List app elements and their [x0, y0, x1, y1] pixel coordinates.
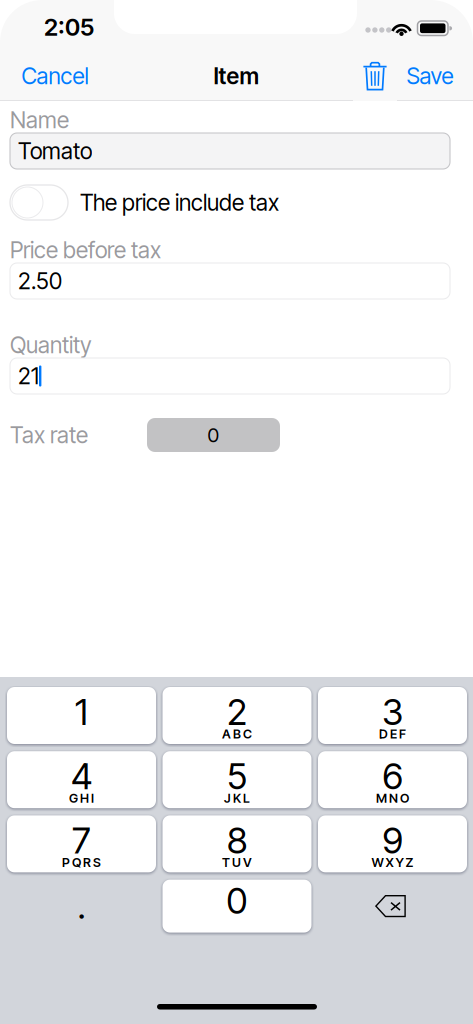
button[interactable]: 9 — [318, 815, 467, 872]
staticText: 8 — [227, 819, 247, 862]
staticText: 4 — [71, 754, 92, 798]
staticText: The price include tax — [80, 189, 279, 216]
staticText: Save — [406, 62, 453, 90]
staticText: A B C — [222, 726, 252, 742]
staticText: G H I — [69, 790, 94, 806]
button[interactable]: 7 — [7, 815, 156, 872]
staticText: 0 — [207, 423, 219, 447]
button[interactable]: 8 — [162, 815, 311, 872]
button[interactable]: 4 — [7, 751, 156, 808]
button[interactable]: Delete — [318, 880, 467, 933]
staticText: W X Y Z — [371, 855, 413, 870]
staticText: 0 — [226, 879, 247, 922]
staticText: 2 — [227, 690, 247, 734]
button[interactable]: The price include tax — [10, 185, 68, 220]
button[interactable]: Save — [400, 51, 460, 101]
staticText: Tax rate — [10, 421, 88, 449]
staticText: 1 — [75, 690, 88, 734]
button[interactable]: 0 — [162, 880, 311, 933]
staticText: 3 — [382, 690, 403, 734]
staticText: 9 — [382, 819, 402, 862]
button[interactable]: 5 — [162, 751, 311, 808]
staticText: Item — [213, 62, 259, 90]
staticText: 5 — [227, 754, 247, 798]
staticText: 2:05 — [44, 12, 94, 41]
staticText: T U V — [222, 855, 252, 870]
staticText: D E F — [379, 726, 406, 742]
staticText: J K L — [224, 790, 250, 806]
button[interactable]: 2 — [162, 687, 311, 744]
staticText: Name — [10, 106, 69, 134]
button[interactable]: 6 — [318, 751, 467, 808]
staticText: . — [77, 885, 85, 927]
staticText: 7 — [72, 819, 91, 862]
button[interactable]: Decimal point — [7, 880, 156, 933]
button[interactable]: 3 — [318, 687, 467, 744]
button[interactable]: 1 — [7, 687, 156, 744]
staticText: M N O — [376, 790, 409, 806]
button[interactable]: Delete — [353, 51, 397, 101]
staticText: Cancel — [21, 62, 88, 90]
staticText: P Q R S — [62, 855, 101, 870]
button[interactable]: 0 — [147, 418, 280, 452]
staticText: Tomato — [18, 137, 92, 165]
staticText: 2.50 — [18, 267, 62, 295]
staticText: 21 — [18, 362, 39, 390]
button[interactable]: Cancel — [12, 51, 98, 101]
staticText: Price before tax — [10, 236, 161, 264]
staticText: 6 — [382, 754, 402, 798]
staticText: Quantity — [10, 331, 92, 359]
